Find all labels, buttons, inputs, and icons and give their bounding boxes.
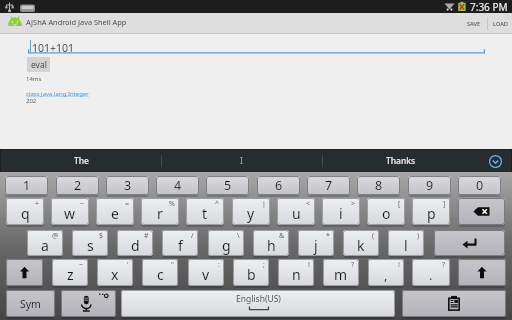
- button[interactable]: b: [233, 259, 269, 286]
- staticText: y: [247, 204, 255, 223]
- button[interactable]: y: [232, 198, 270, 225]
- button[interactable]: 1: [5, 176, 48, 195]
- staticText: a: [41, 236, 49, 255]
- staticText: 8: [375, 177, 383, 194]
- button[interactable]: Thanks: [323, 150, 479, 172]
- staticText: &: [279, 231, 285, 241]
- staticText: u: [292, 204, 301, 223]
- button[interactable]: i: [322, 198, 360, 225]
- staticText: I: [240, 155, 244, 167]
- staticText: >: [351, 199, 356, 209]
- button[interactable]: a: [27, 230, 63, 256]
- button[interactable]: m: [323, 259, 359, 286]
- button[interactable]: 5: [206, 176, 249, 195]
- button[interactable]: 8: [357, 176, 400, 195]
- button[interactable]: More suggestions: [479, 150, 511, 172]
- staticText: v: [202, 265, 210, 284]
- staticText: @: [52, 231, 59, 241]
- button[interactable]: Shift: [6, 259, 43, 286]
- staticText: o: [382, 204, 391, 223]
- staticText: SAVE: [467, 20, 481, 28]
- staticText: z: [67, 265, 74, 284]
- staticText: 202: [26, 97, 37, 105]
- staticText: #: [144, 231, 149, 241]
- staticText: 2: [74, 177, 82, 194]
- button[interactable]: 9: [408, 176, 451, 195]
- button[interactable]: I: [162, 150, 322, 172]
- button[interactable]: t: [186, 198, 224, 225]
- button[interactable]: Enter: [434, 230, 505, 256]
- button[interactable]: p: [412, 198, 450, 225]
- staticText: =: [125, 199, 130, 209]
- staticText: :: [218, 260, 220, 270]
- button[interactable]: v: [188, 259, 224, 286]
- staticText: q: [21, 204, 30, 223]
- staticText: |: [262, 199, 266, 209]
- staticText: Sym: [20, 297, 41, 311]
- button[interactable]: h: [253, 230, 289, 256]
- staticText: l: [404, 236, 408, 255]
- staticText: 101+101: [32, 41, 75, 55]
- button[interactable]: r: [141, 198, 179, 225]
- staticText: %: [169, 199, 175, 209]
- button[interactable]: e: [96, 198, 134, 225]
- button[interactable]: The: [1, 150, 161, 172]
- button[interactable]: eval: [27, 57, 50, 72]
- button[interactable]: Clipboard: [402, 290, 506, 317]
- button[interactable]: j: [298, 230, 334, 256]
- button[interactable]: f: [162, 230, 198, 256]
- staticText: g: [222, 236, 231, 255]
- staticText: The: [74, 155, 89, 167]
- staticText: 0: [476, 177, 484, 194]
- staticText: 3: [124, 177, 132, 194]
- staticText: \: [237, 231, 240, 241]
- button[interactable]: 3: [106, 176, 149, 195]
- button[interactable]: LOAD: [488, 13, 512, 34]
- button[interactable]: Backspace: [458, 198, 505, 225]
- staticText: ;: [263, 260, 265, 270]
- button[interactable]: class java.lang.Integer: [26, 90, 89, 98]
- staticText: n: [292, 265, 301, 284]
- button[interactable]: 2: [56, 176, 99, 195]
- button[interactable]: SAVE: [459, 13, 488, 34]
- button[interactable]: q: [6, 198, 44, 225]
- button[interactable]: u: [277, 198, 315, 225]
- staticText: x: [111, 265, 119, 284]
- button[interactable]: .: [412, 259, 450, 286]
- staticText: 4: [174, 177, 182, 194]
- button[interactable]: Sym: [6, 290, 55, 317]
- button[interactable]: d: [117, 230, 153, 256]
- staticText: w: [64, 204, 76, 223]
- button[interactable]: Space: [121, 290, 395, 317]
- button[interactable]: l: [388, 230, 424, 256]
- staticText: t: [202, 204, 208, 223]
- button[interactable]: 4: [156, 176, 199, 195]
- button[interactable]: Shift: [458, 259, 506, 286]
- staticText: !: [308, 260, 310, 270]
- button[interactable]: k: [343, 230, 379, 256]
- staticText: English(US): [236, 293, 281, 305]
- button[interactable]: s: [72, 230, 108, 256]
- button[interactable]: 0: [458, 176, 501, 195]
- button[interactable]: 7: [307, 176, 350, 195]
- button[interactable]: x: [97, 259, 133, 286]
- button[interactable]: z: [52, 259, 88, 286]
- staticText: ?: [351, 260, 355, 270]
- button[interactable]: o: [367, 198, 405, 225]
- staticText: 6: [275, 177, 283, 194]
- button[interactable]: g: [208, 230, 244, 256]
- button[interactable]: ,: [368, 259, 404, 286]
- button[interactable]: Voice input: [61, 290, 116, 317]
- button[interactable]: w: [51, 198, 89, 225]
- staticText: 14ms: [26, 75, 42, 83]
- staticText: h: [267, 236, 276, 255]
- staticText: b: [247, 265, 256, 284]
- button[interactable]: c: [142, 259, 178, 286]
- staticText: LOAD: [493, 20, 508, 28]
- staticText: +: [35, 199, 40, 209]
- button[interactable]: 6: [257, 176, 300, 195]
- staticText: <: [306, 199, 311, 209]
- button[interactable]: n: [278, 259, 314, 286]
- staticText: ": [171, 260, 174, 270]
- staticText: d: [131, 236, 140, 255]
